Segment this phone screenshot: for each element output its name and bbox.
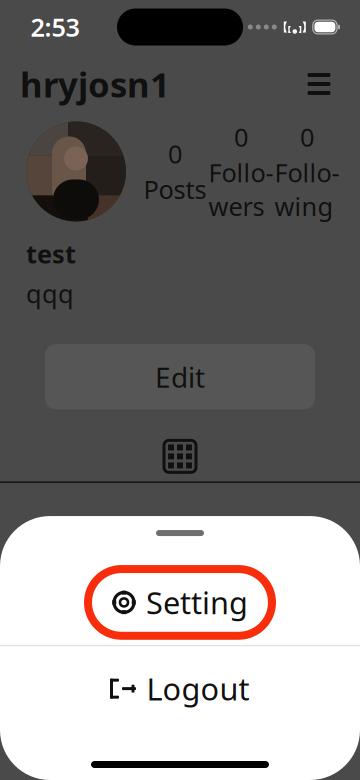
staticText: Posts <box>143 172 206 206</box>
staticText: qqq <box>26 277 74 310</box>
button[interactable]: Setting <box>0 560 360 645</box>
staticText: Logout <box>146 668 249 709</box>
staticText: 0 <box>234 120 248 154</box>
staticText: Edit <box>155 358 205 395</box>
button[interactable]: Edit <box>45 344 315 409</box>
button[interactable]: 0 <box>142 137 208 206</box>
staticText: 0 <box>168 137 182 170</box>
button[interactable]: 0 <box>208 120 274 223</box>
staticText: 0 <box>300 120 314 154</box>
staticText: Following <box>274 156 339 223</box>
staticText: Followers <box>208 156 273 223</box>
button[interactable]: Menu <box>298 65 340 103</box>
button[interactable]: Posts grid <box>0 431 360 481</box>
staticText: hryjosn1 <box>20 61 170 107</box>
button[interactable]: Logout <box>0 646 360 731</box>
staticText: test <box>26 237 76 270</box>
staticText: 2:53 <box>30 10 79 44</box>
button[interactable]: 0 <box>274 120 340 223</box>
staticText: Setting <box>146 582 248 623</box>
